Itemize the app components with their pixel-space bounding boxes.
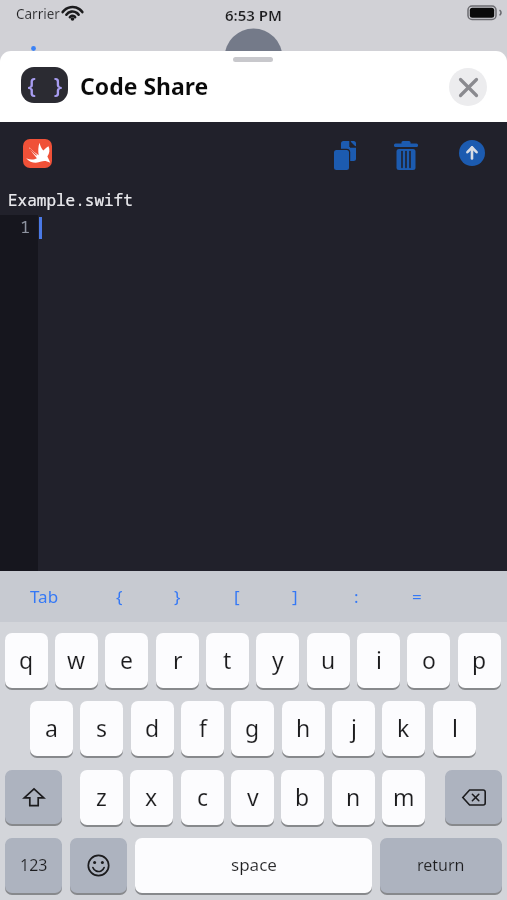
button[interactable]: return [380, 838, 502, 893]
staticText: n [346, 781, 361, 812]
button[interactable] [23, 139, 52, 168]
staticText: 6:53 PM [0, 5, 507, 25]
staticText: x [145, 781, 158, 812]
staticText: m [393, 781, 415, 812]
button[interactable]: q [5, 633, 48, 688]
button[interactable]: x [130, 770, 173, 825]
staticText: z [96, 781, 107, 812]
button[interactable] [445, 770, 502, 824]
button[interactable]: l [433, 701, 476, 756]
staticText: Tab [30, 585, 59, 608]
button[interactable]: g [231, 701, 274, 756]
button[interactable]: m [382, 770, 425, 825]
staticText: w [67, 644, 86, 675]
staticText: { [116, 585, 123, 608]
button[interactable]: z [80, 770, 123, 825]
button[interactable]: b [281, 770, 324, 825]
staticText: a [45, 712, 58, 743]
staticText: t [223, 644, 232, 675]
button[interactable]: space [135, 838, 372, 893]
staticText: j [351, 712, 357, 743]
staticText: l [452, 712, 458, 743]
button[interactable]: Tab [26, 571, 62, 622]
button[interactable]: d [131, 701, 174, 756]
button[interactable] [449, 68, 487, 106]
button[interactable]: 123 [5, 838, 62, 893]
button[interactable]: ] [277, 571, 313, 622]
staticText: h [296, 712, 311, 743]
staticText: v [247, 781, 259, 812]
button[interactable]: a [30, 701, 73, 756]
staticText: ] [292, 585, 298, 608]
staticText: { } [25, 70, 65, 100]
staticText: Code Share [80, 70, 209, 101]
staticText: r [173, 644, 183, 675]
button[interactable]: : [338, 571, 374, 622]
button[interactable]: w [55, 633, 98, 688]
button[interactable]: { } [21, 67, 68, 103]
staticText: k [397, 712, 410, 743]
button[interactable]: [ [219, 571, 255, 622]
staticText: b [295, 781, 310, 812]
staticText: u [321, 644, 336, 675]
staticText: return [417, 854, 465, 876]
button[interactable]: r [156, 633, 199, 688]
staticText: f [199, 712, 207, 743]
button[interactable] [459, 140, 485, 166]
button[interactable]: n [332, 770, 375, 825]
button[interactable]: { [101, 571, 137, 622]
staticText: g [245, 712, 260, 743]
button[interactable]: v [231, 770, 274, 825]
staticText: Carrier [16, 5, 60, 23]
button[interactable]: j [332, 701, 375, 756]
staticText: e [120, 644, 133, 675]
staticText: = [412, 585, 422, 608]
button[interactable]: = [399, 571, 435, 622]
staticText: 123 [20, 854, 48, 876]
button[interactable]: } [159, 571, 195, 622]
staticText: s [96, 712, 108, 743]
button[interactable]: t [206, 633, 249, 688]
staticText: q [19, 644, 34, 675]
staticText: space [231, 853, 277, 876]
button[interactable]: s [80, 701, 123, 756]
staticText: y [272, 644, 284, 675]
button[interactable]: o [407, 633, 450, 688]
staticText: c [197, 781, 209, 812]
button[interactable]: p [458, 633, 501, 688]
button[interactable]: k [382, 701, 425, 756]
button[interactable] [5, 770, 62, 824]
button[interactable] [334, 141, 357, 171]
staticText: d [145, 712, 160, 743]
staticText: 1 [20, 215, 31, 238]
staticText: i [376, 644, 382, 675]
button[interactable]: h [282, 701, 325, 756]
staticText: o [422, 644, 436, 675]
button[interactable]: f [181, 701, 224, 756]
staticText: p [472, 644, 487, 675]
button[interactable] [70, 838, 127, 893]
staticText: [ [234, 585, 240, 608]
staticText: Example.swift [8, 189, 133, 211]
button[interactable]: e [105, 633, 148, 688]
button[interactable]: c [181, 770, 224, 825]
button[interactable]: i [357, 633, 400, 688]
staticText: } [174, 585, 181, 608]
staticText: : [354, 585, 359, 608]
button[interactable] [394, 141, 418, 170]
button[interactable]: u [307, 633, 350, 688]
button[interactable]: y [256, 633, 299, 688]
